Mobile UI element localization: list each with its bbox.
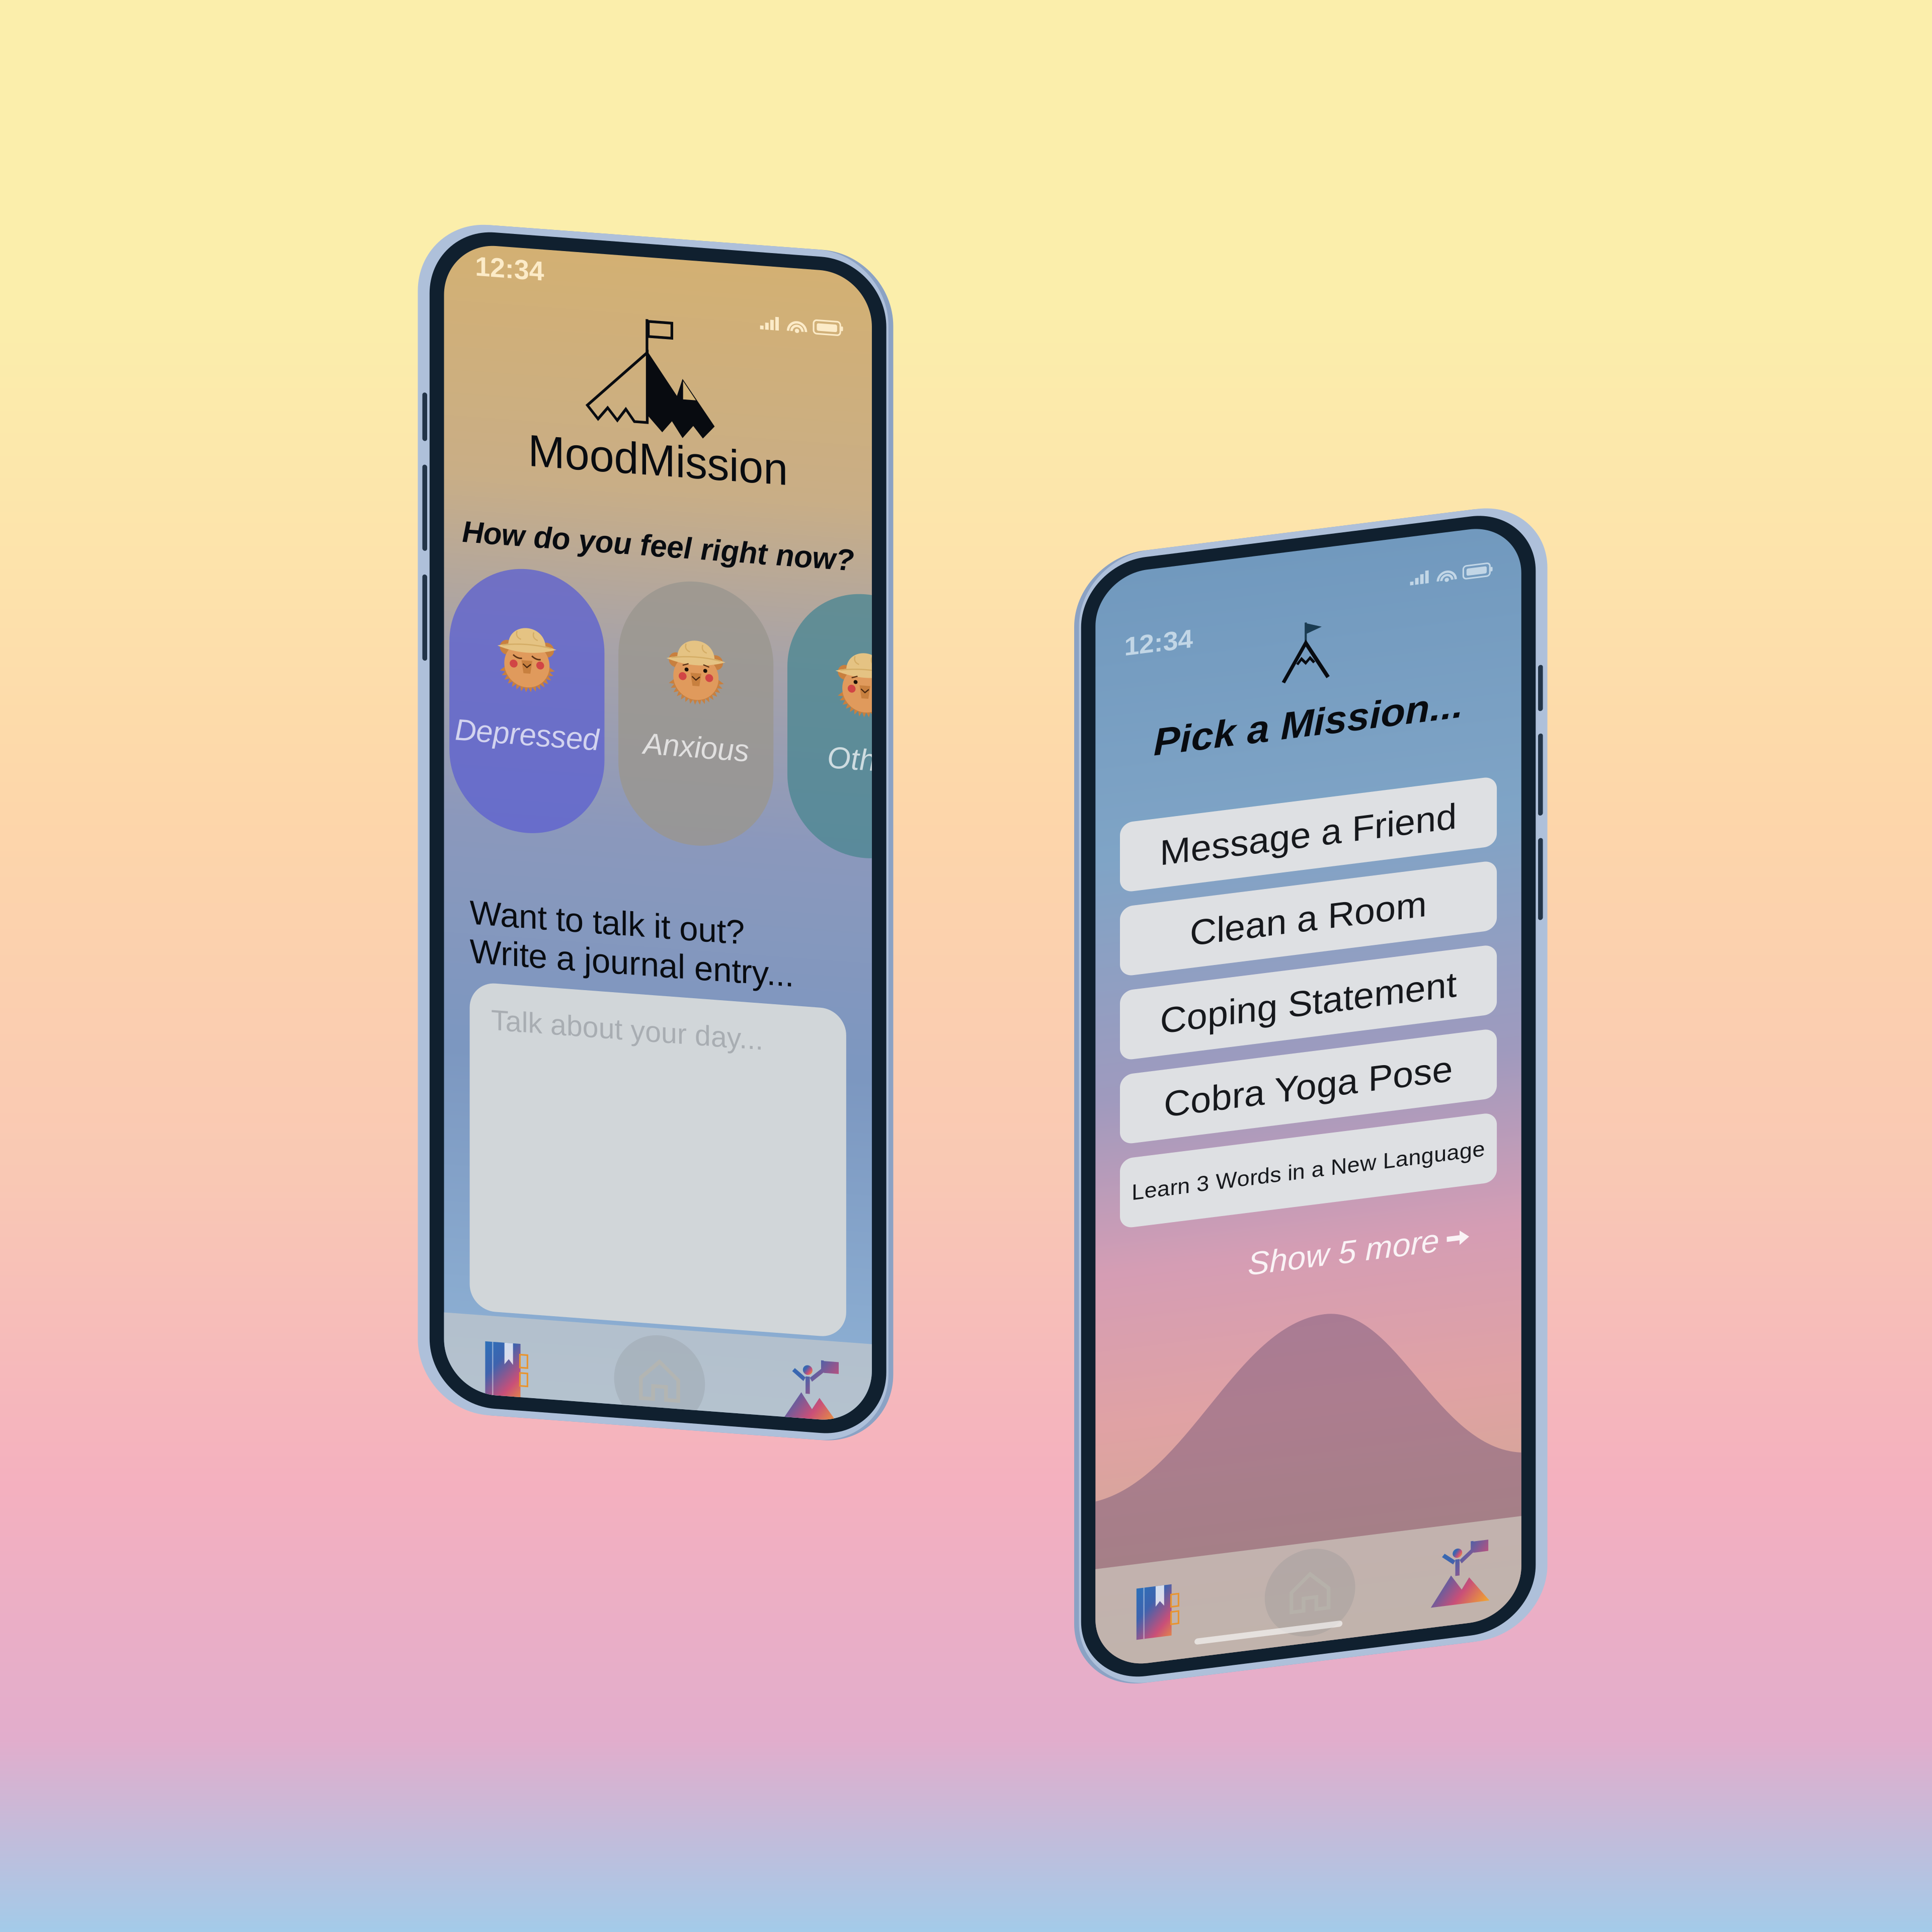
staticText: 12:34 bbox=[472, 245, 537, 274]
button[interactable]: Journal bbox=[466, 1245, 541, 1332]
button[interactable]: Anxious bbox=[607, 539, 753, 786]
button[interactable]: Clean a Room bbox=[1117, 907, 1474, 975]
staticText: Coping Statement bbox=[1155, 1004, 1436, 1043]
staticText: Write a journal entry... bbox=[467, 882, 772, 917]
button[interactable]: Depressed bbox=[448, 539, 594, 786]
staticText: Clean a Room bbox=[1184, 921, 1407, 960]
staticText: Learn 3 Words in a New Language bbox=[1129, 1176, 1463, 1200]
button[interactable]: Message a Friend bbox=[1117, 824, 1474, 892]
button[interactable]: Missions bbox=[1401, 1560, 1477, 1646]
button[interactable]: Cobra Yoga Pose bbox=[1117, 1072, 1474, 1140]
button[interactable]: Coping Statement bbox=[1117, 989, 1474, 1058]
button[interactable]: Talk about your day... bbox=[467, 929, 821, 1235]
staticText: Other bbox=[803, 678, 874, 709]
button[interactable]: Other bbox=[766, 539, 912, 786]
staticText: Show 5 more bbox=[1238, 1256, 1419, 1290]
staticText: 12:34 bbox=[1121, 637, 1186, 666]
button[interactable]: Journal bbox=[1117, 1560, 1193, 1646]
staticText: Talk about your day... bbox=[487, 948, 743, 978]
staticText: Cobra Yoga Pose bbox=[1159, 1086, 1432, 1125]
staticText: Depressed bbox=[453, 678, 589, 709]
staticText: Anxious bbox=[630, 678, 730, 709]
staticText: MoodMission bbox=[522, 405, 766, 451]
staticText: How do you feel right now? bbox=[460, 493, 828, 524]
staticText: Message a Friend bbox=[1155, 839, 1436, 878]
button[interactable]: Home bbox=[1252, 1560, 1342, 1646]
staticText: Pick a Mission... bbox=[1149, 728, 1442, 770]
button[interactable]: Learn 3 Words in a New Language bbox=[1117, 1154, 1474, 1223]
button[interactable]: Home bbox=[600, 1246, 691, 1332]
button[interactable]: Show 5 more bbox=[1238, 1256, 1448, 1290]
